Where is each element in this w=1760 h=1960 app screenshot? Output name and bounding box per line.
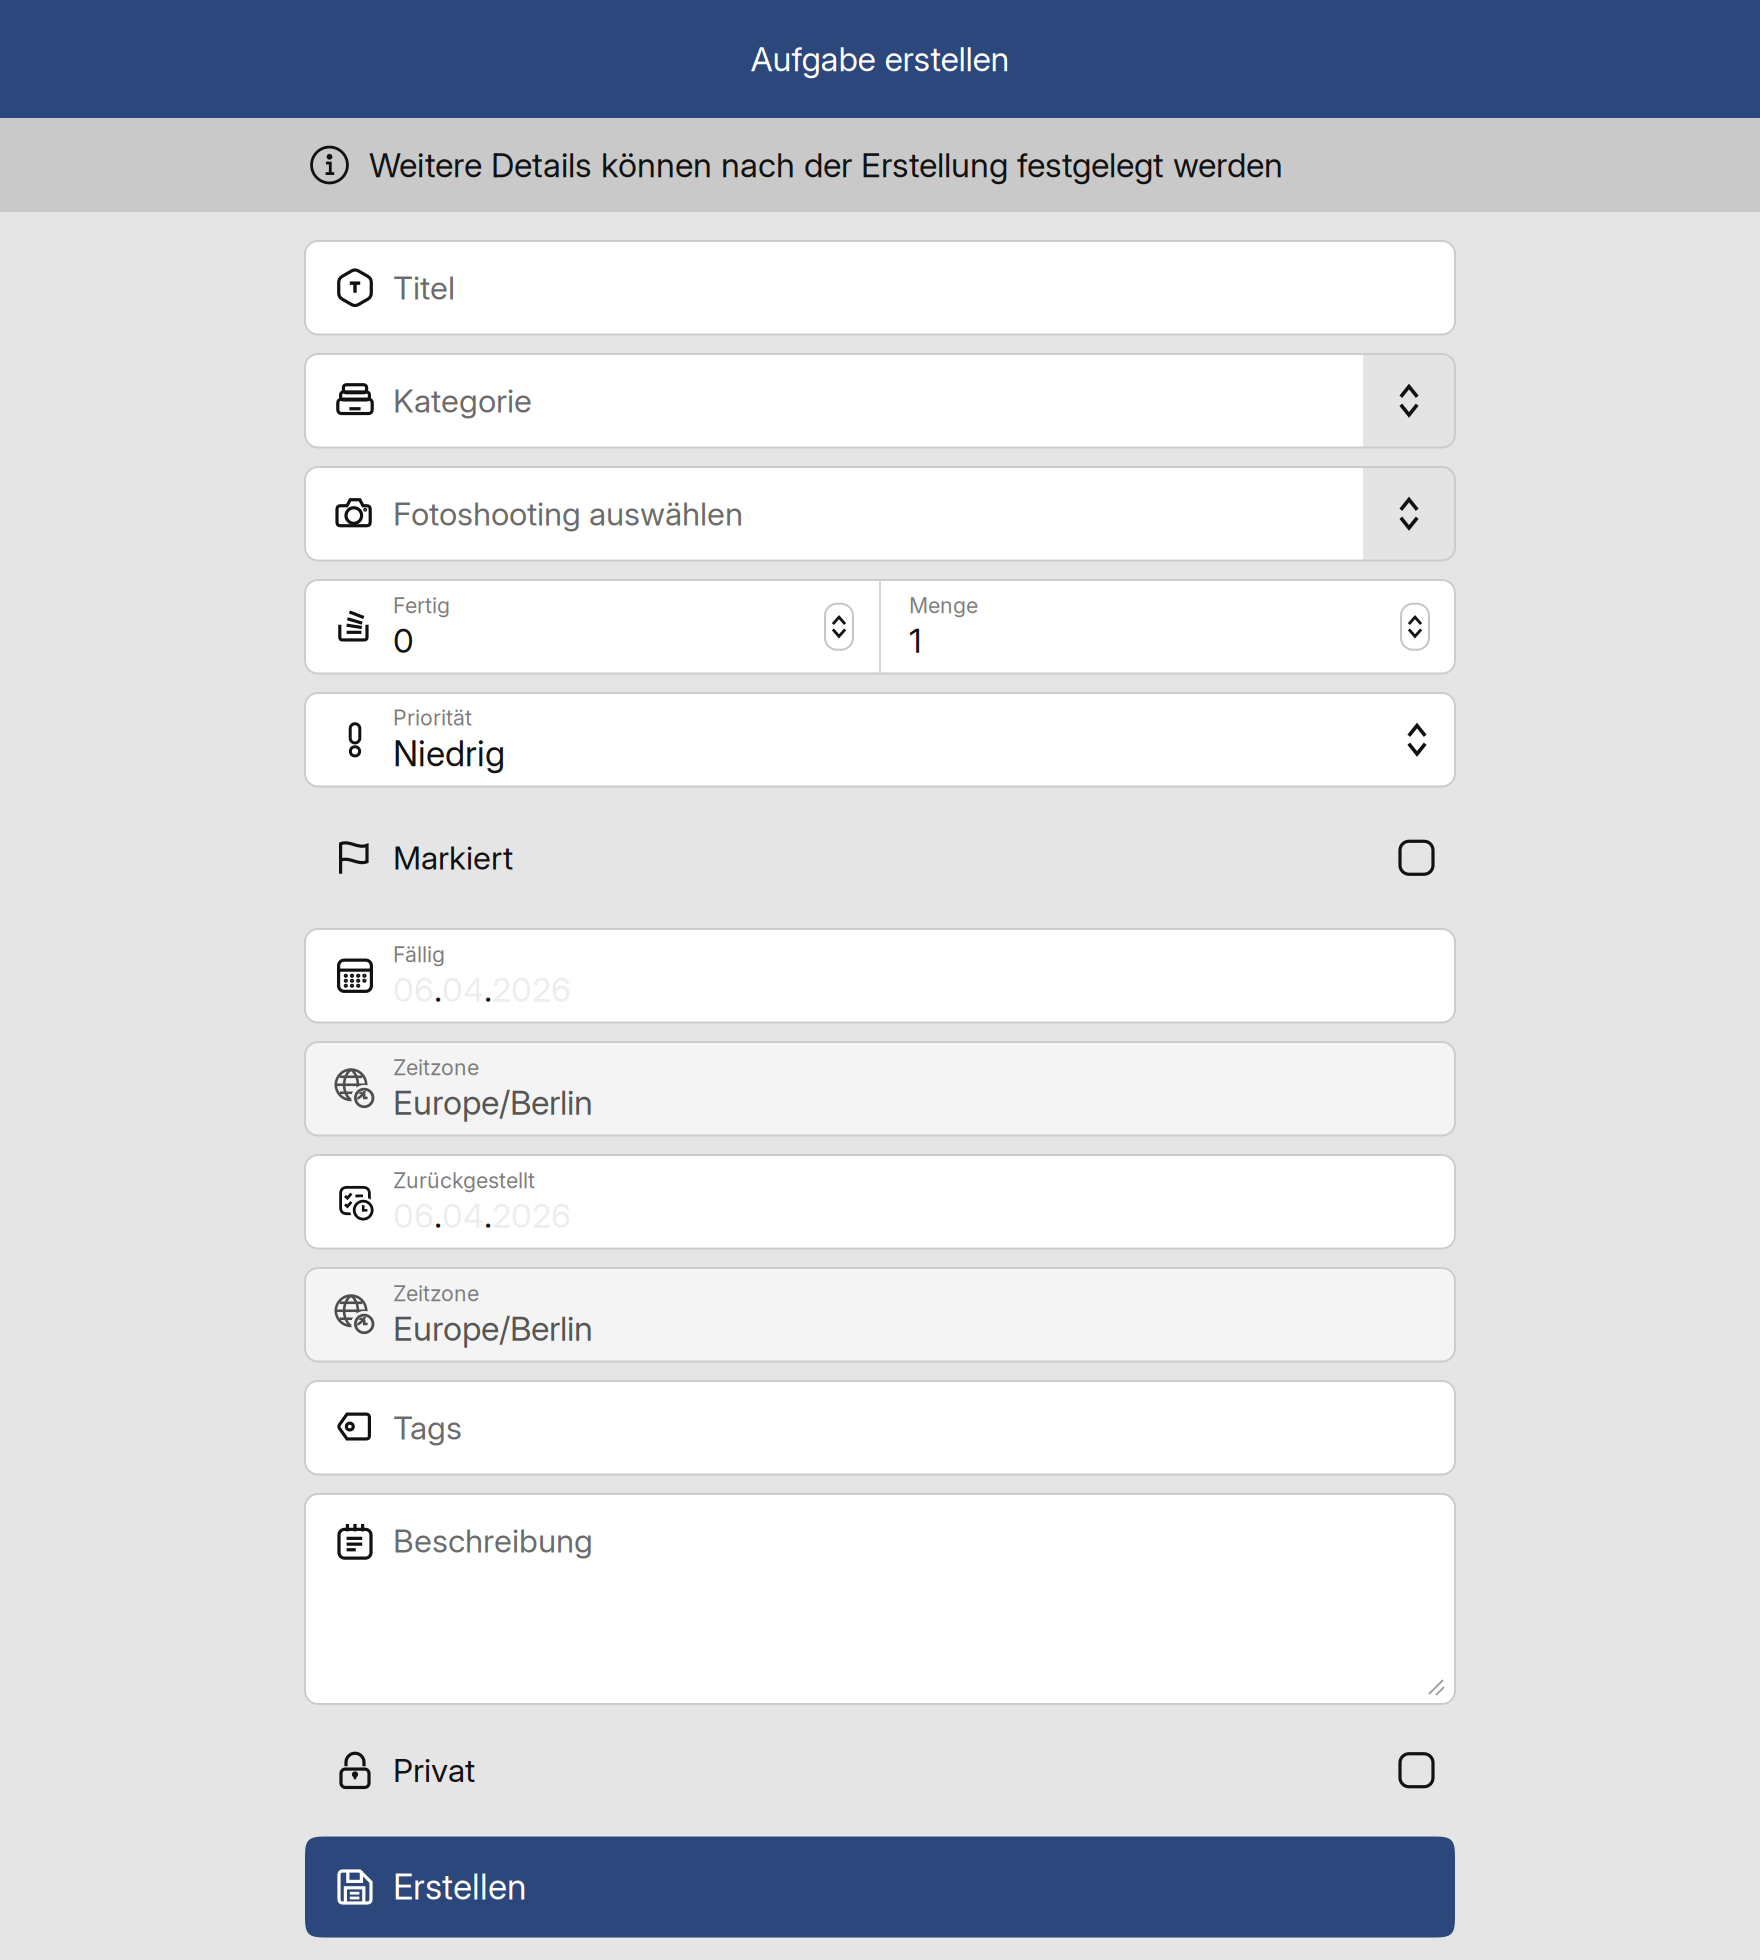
staticText: 04 bbox=[442, 1195, 484, 1236]
button[interactable]: Tags bbox=[305, 1381, 1455, 1474]
staticText: Aufgabe erstellen bbox=[750, 39, 1009, 79]
staticText: . bbox=[434, 1195, 442, 1236]
staticText: Europe/Berlin bbox=[393, 1308, 593, 1349]
button[interactable]: Beschreibung bbox=[305, 1494, 1455, 1704]
staticText: 1 bbox=[909, 620, 922, 661]
staticText: Markiert bbox=[393, 838, 513, 877]
staticText: Menge bbox=[909, 593, 978, 618]
staticText: Titel bbox=[393, 268, 455, 307]
staticText: 04 bbox=[442, 969, 484, 1010]
staticText: . bbox=[484, 969, 492, 1010]
button[interactable]: Privat bbox=[305, 1723, 1455, 1817]
button[interactable]: Kategorie bbox=[305, 354, 1455, 447]
button[interactable]: Erstellen bbox=[305, 1836, 1455, 1937]
button[interactable]: Zeitzone bbox=[305, 1042, 1455, 1135]
staticText: 0 bbox=[393, 620, 414, 661]
staticText: Tags bbox=[393, 1408, 462, 1447]
staticText: Fertig bbox=[393, 593, 450, 618]
staticText: Zeitzone bbox=[393, 1281, 479, 1306]
button[interactable]: Markiert bbox=[305, 806, 1455, 909]
staticText: 06 bbox=[393, 1195, 434, 1236]
button[interactable]: Fällig bbox=[305, 929, 1455, 1022]
button[interactable]: Priorität bbox=[305, 693, 1455, 786]
staticText: Priorität bbox=[393, 705, 472, 731]
button[interactable]: Zeitzone bbox=[305, 1268, 1455, 1361]
staticText: 06 bbox=[393, 969, 434, 1010]
button[interactable]: Menge bbox=[881, 580, 1455, 673]
staticText: Zurückgestellt bbox=[393, 1168, 535, 1193]
staticText: Niedrig bbox=[393, 733, 505, 775]
staticText: . bbox=[434, 969, 442, 1010]
staticText: Privat bbox=[393, 1751, 475, 1790]
staticText: Fällig bbox=[393, 942, 445, 967]
staticText: Kategorie bbox=[393, 381, 532, 420]
staticText: Zeitzone bbox=[393, 1055, 479, 1080]
button[interactable]: Fotoshooting auswählen bbox=[305, 467, 1455, 560]
button[interactable]: Titel bbox=[305, 241, 1455, 334]
staticText: 2026 bbox=[492, 969, 571, 1010]
staticText: Erstellen bbox=[393, 1866, 526, 1908]
staticText: 2026 bbox=[492, 1195, 571, 1236]
staticText: Beschreibung bbox=[393, 1521, 593, 1560]
staticText: Fotoshooting auswählen bbox=[393, 494, 743, 533]
staticText: Europe/Berlin bbox=[393, 1082, 593, 1123]
staticText: Weitere Details können nach der Erstellu… bbox=[369, 145, 1283, 185]
button[interactable]: Fertig bbox=[305, 580, 879, 673]
staticText: . bbox=[484, 1195, 492, 1236]
button[interactable]: Zurückgestellt bbox=[305, 1155, 1455, 1248]
